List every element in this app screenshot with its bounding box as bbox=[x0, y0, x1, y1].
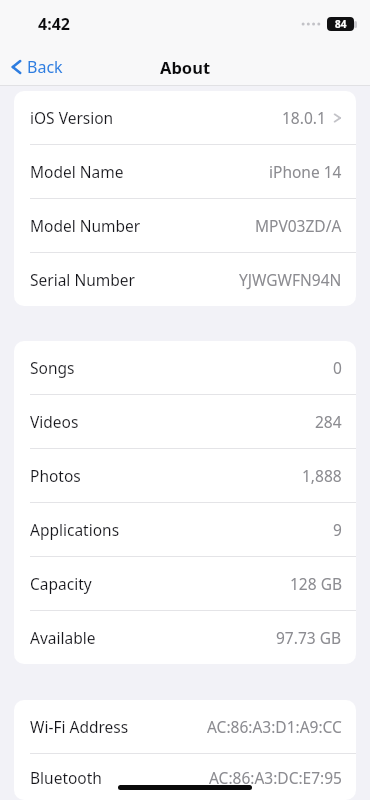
other: Home indicator bbox=[118, 785, 252, 790]
staticText: About bbox=[160, 56, 211, 78]
button[interactable]: Videos bbox=[14, 395, 356, 449]
staticText: 0 bbox=[333, 357, 342, 378]
staticText: Bluetooth bbox=[30, 767, 102, 788]
button[interactable]: Bluetooth bbox=[14, 754, 356, 800]
staticText: Videos bbox=[30, 411, 79, 432]
staticText: 9 bbox=[333, 519, 342, 540]
staticText: AC:86:A3:D1:A9:CC bbox=[207, 716, 342, 737]
staticText: Photos bbox=[30, 465, 81, 486]
button[interactable]: Applications bbox=[14, 503, 356, 557]
staticText: 4:42 bbox=[38, 13, 70, 35]
staticText: Wi-Fi Address bbox=[30, 716, 129, 737]
button[interactable]: Wi-Fi Address bbox=[14, 700, 356, 754]
button[interactable]: Photos bbox=[14, 449, 356, 503]
button[interactable]: Model Name bbox=[14, 145, 356, 199]
staticText: Songs bbox=[30, 357, 75, 378]
staticText: Applications bbox=[30, 519, 120, 540]
button[interactable]: Back bbox=[6, 51, 68, 83]
button[interactable]: Songs bbox=[14, 341, 356, 395]
button[interactable]: Model Number bbox=[14, 199, 356, 253]
staticText: Serial Number bbox=[30, 269, 135, 290]
button[interactable]: iOS Version bbox=[14, 91, 356, 145]
staticText: YJWGWFN94N bbox=[239, 269, 342, 290]
button[interactable]: Serial Number bbox=[14, 253, 356, 306]
staticText: Model Number bbox=[30, 215, 141, 236]
button[interactable]: Available bbox=[14, 611, 356, 664]
staticText: 128 GB bbox=[290, 573, 342, 594]
staticText: 284 bbox=[315, 411, 342, 432]
staticText: Back bbox=[27, 56, 63, 78]
staticText: iOS Version bbox=[30, 107, 114, 128]
staticText: 84 bbox=[335, 17, 347, 31]
staticText: MPV03ZD/A bbox=[255, 215, 342, 236]
staticText: AC:86:A3:DC:E7:95 bbox=[209, 767, 342, 788]
staticText: 1,888 bbox=[302, 465, 342, 486]
staticText: Available bbox=[30, 627, 96, 648]
staticText: 97.73 GB bbox=[276, 627, 342, 648]
staticText: 18.0.1 bbox=[282, 107, 326, 128]
button[interactable]: Capacity bbox=[14, 557, 356, 611]
staticText: iPhone 14 bbox=[269, 161, 342, 182]
staticText: Model Name bbox=[30, 161, 124, 182]
staticText: Capacity bbox=[30, 573, 92, 594]
